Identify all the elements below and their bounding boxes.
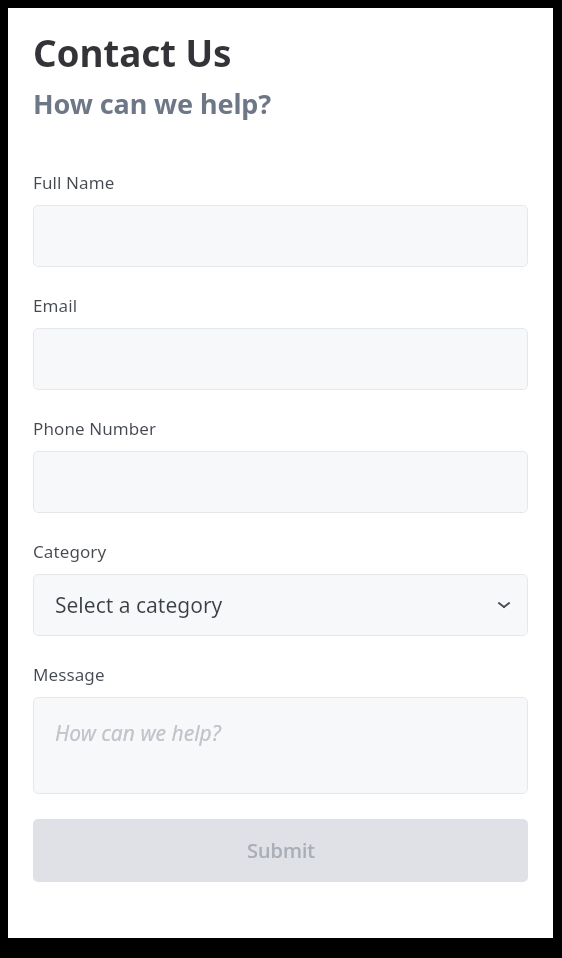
staticText: Category	[33, 540, 107, 563]
button[interactable]: Select a category	[33, 574, 528, 636]
staticText: Message	[33, 663, 105, 686]
button[interactable]: How can we help?	[33, 697, 528, 794]
staticText: Submit	[247, 837, 315, 864]
staticText: How can we help?	[55, 719, 221, 748]
staticText: Select a category	[55, 591, 223, 620]
staticText: Email	[33, 294, 78, 317]
button[interactable]	[33, 328, 528, 390]
button[interactable]: Submit	[33, 819, 528, 882]
staticText: Contact Us	[33, 27, 232, 77]
staticText: How can we help?	[33, 85, 272, 122]
button[interactable]	[33, 205, 528, 267]
staticText: Full Name	[33, 171, 115, 194]
button[interactable]	[33, 451, 528, 513]
staticText: Phone Number	[33, 417, 157, 440]
other: Open category list	[496, 597, 512, 613]
